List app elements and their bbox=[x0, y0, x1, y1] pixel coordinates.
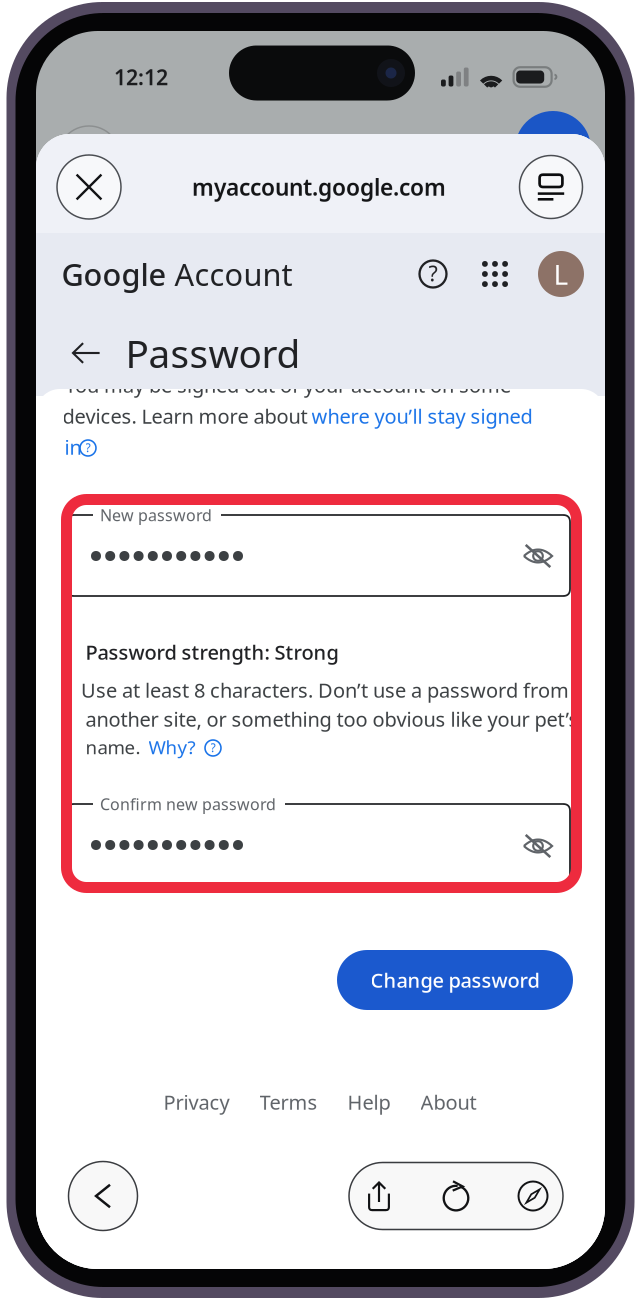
staticText: Account bbox=[166, 254, 292, 294]
staticText: Password strength: Strong bbox=[85, 639, 338, 665]
staticText: Help bbox=[347, 1089, 390, 1115]
staticText: Terms bbox=[259, 1089, 317, 1115]
button[interactable]: Reader view bbox=[519, 155, 582, 218]
staticText: Password bbox=[125, 327, 300, 379]
staticText: Privacy bbox=[163, 1089, 229, 1115]
staticText: New password bbox=[100, 504, 212, 526]
staticText: Google bbox=[61, 254, 166, 294]
staticText: ? bbox=[85, 440, 90, 455]
staticText: You may be signed out of your account on… bbox=[65, 372, 511, 398]
staticText: in bbox=[64, 434, 81, 460]
button[interactable]: Help bbox=[347, 1089, 390, 1115]
button[interactable]: Change password bbox=[337, 950, 573, 1010]
button[interactable]: Confirm new password bbox=[67, 804, 570, 885]
button[interactable]: Back bbox=[68, 1161, 137, 1230]
staticText: ? bbox=[428, 259, 437, 287]
staticText: another site, or something too obvious l… bbox=[85, 706, 578, 732]
button[interactable]: Reload bbox=[435, 1175, 477, 1217]
staticText: ? bbox=[210, 740, 215, 755]
button[interactable]: Account bbox=[538, 251, 584, 297]
staticText: L bbox=[553, 255, 568, 293]
button[interactable]: Show new password bbox=[515, 533, 561, 579]
staticText: name. bbox=[85, 735, 140, 759]
staticText: Use at least 8 characters. Don’t use a p… bbox=[81, 677, 569, 703]
staticText: where you’ll stay signed bbox=[311, 403, 532, 429]
button[interactable]: Share bbox=[358, 1175, 400, 1217]
button[interactable]: Show confirmation password bbox=[515, 823, 561, 869]
button[interactable]: About bbox=[420, 1089, 476, 1115]
button[interactable]: Open in Safari bbox=[512, 1175, 554, 1217]
staticText: About bbox=[420, 1089, 476, 1115]
button[interactable]: Privacy bbox=[163, 1089, 229, 1115]
staticText: Why? bbox=[148, 735, 195, 759]
staticText: Confirm new password bbox=[100, 793, 276, 815]
button[interactable]: Back bbox=[63, 330, 109, 376]
staticText: Change password bbox=[370, 967, 539, 993]
button[interactable]: Help bbox=[410, 251, 456, 297]
button[interactable]: Close bbox=[57, 155, 121, 219]
button[interactable]: Terms bbox=[259, 1089, 317, 1115]
staticText: devices. Learn more about bbox=[62, 403, 307, 429]
button[interactable]: Why? bbox=[148, 735, 195, 759]
staticText: 12:12 bbox=[114, 63, 168, 91]
button[interactable]: New password bbox=[67, 515, 570, 596]
button[interactable]: Google apps bbox=[472, 251, 518, 297]
staticText: myaccount.google.com bbox=[192, 172, 446, 202]
